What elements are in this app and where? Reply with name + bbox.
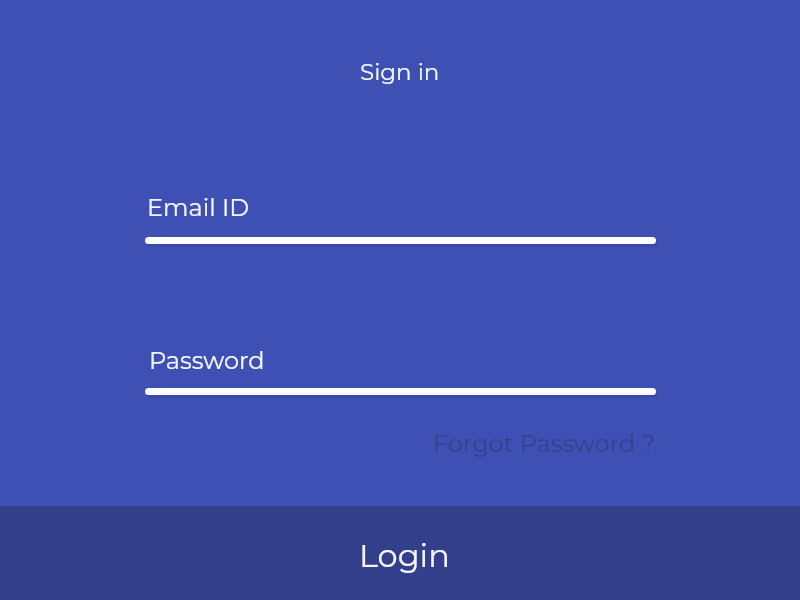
staticText: Password	[149, 346, 265, 375]
staticText: Login	[359, 536, 450, 575]
button[interactable]	[145, 340, 656, 397]
button[interactable]: Login	[0, 506, 800, 600]
staticText: Email ID	[147, 193, 249, 222]
staticText: Forgot Password ?	[433, 429, 656, 458]
button[interactable]	[145, 188, 656, 246]
button[interactable]: Forgot Password ?	[433, 429, 656, 458]
staticText: Sign in	[360, 58, 440, 86]
